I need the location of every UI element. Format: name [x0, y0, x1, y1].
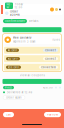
- staticText: expires in 2 days: [13, 40, 35, 43]
- staticText: Pay now: [47, 113, 58, 116]
- staticText: PAID: [5, 86, 12, 89]
- button[interactable]: Confirm order: [3, 19, 27, 23]
- staticText: details: [29, 19, 38, 23]
- staticText: Collect: [45, 57, 56, 60]
- staticText: Today 12:30: [14, 2, 22, 9]
- staticText: ¥12 OFF: [7, 57, 18, 60]
- staticText: ¥5 OFF: [7, 49, 17, 52]
- staticText: NEW: [6, 2, 11, 9]
- staticText: View all coupons: [19, 74, 44, 77]
- button[interactable]: Pay now: [44, 112, 61, 117]
- button[interactable]: Cart: [3, 112, 14, 117]
- staticText: Collected: [41, 66, 56, 69]
- staticText: Collect: [45, 49, 56, 52]
- staticText: Cart: [6, 113, 11, 116]
- button[interactable]: Order again: [3, 95, 25, 100]
- button[interactable]: ¥5 OFF: [2, 45, 61, 54]
- staticText: Order again: [6, 96, 22, 99]
- staticText: ¥20 OFF: [7, 66, 19, 69]
- staticText: ¥28.00: [43, 86, 53, 89]
- staticText: Free delivery: [13, 36, 31, 39]
- staticText: rules: [52, 38, 59, 41]
- staticText: Order #2048: [10, 10, 20, 16]
- button[interactable]: ¥12 OFF: [2, 54, 61, 62]
- staticText: Confirm order: [5, 19, 25, 23]
- button[interactable]: ¥20 OFF: [2, 62, 61, 71]
- staticText: Delivered at 12:48: [6, 91, 32, 94]
